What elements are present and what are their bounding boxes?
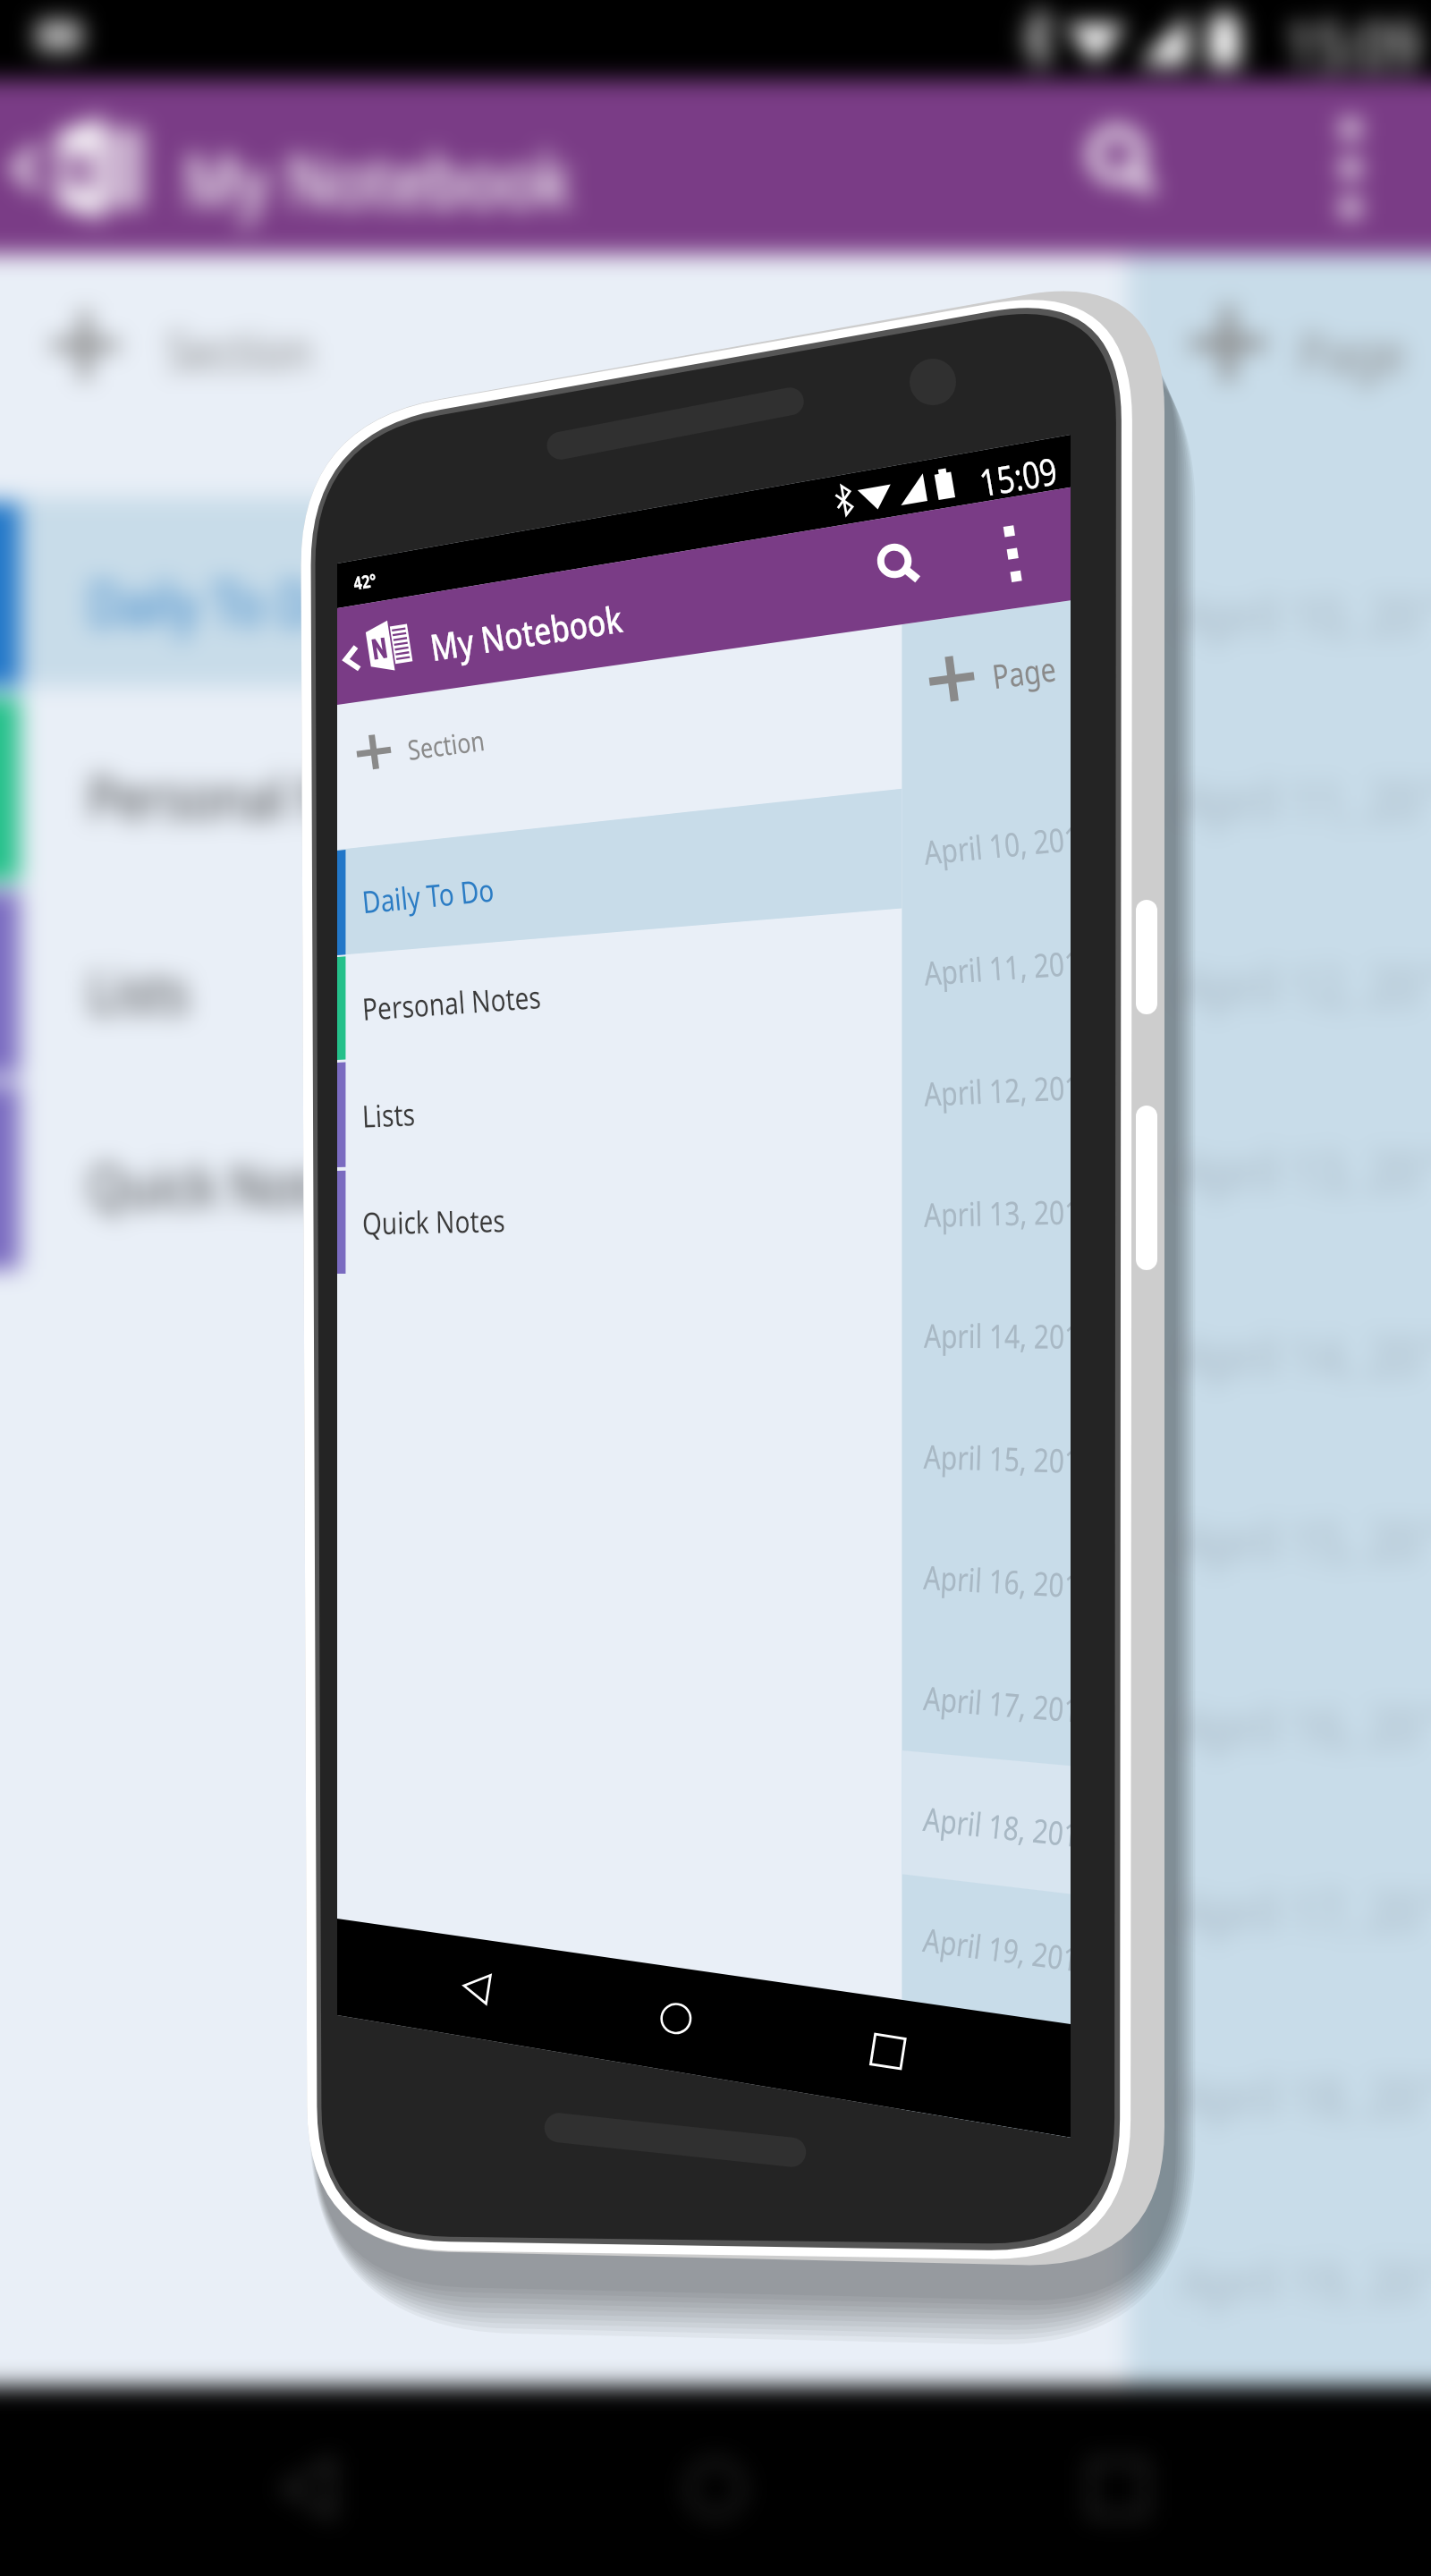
button[interactable] <box>903 787 1070 907</box>
button[interactable] <box>903 1760 1070 1880</box>
button[interactable] <box>903 909 1070 1029</box>
button[interactable] <box>338 1063 896 1166</box>
button[interactable] <box>340 707 894 814</box>
button[interactable] <box>386 590 655 698</box>
button[interactable] <box>338 1170 896 1274</box>
button[interactable] <box>338 955 896 1059</box>
button[interactable]: Back <box>322 617 386 710</box>
button[interactable] <box>903 1639 1070 1758</box>
button[interactable]: Back <box>438 1941 528 2030</box>
button[interactable]: Recent apps <box>845 2012 935 2102</box>
button[interactable] <box>903 1152 1070 1272</box>
button[interactable] <box>338 845 896 951</box>
button[interactable]: Home <box>635 1977 724 2066</box>
button[interactable]: More options <box>966 492 1059 599</box>
button[interactable]: Search <box>850 510 948 617</box>
button[interactable] <box>903 1395 1070 1515</box>
button[interactable] <box>903 1517 1070 1637</box>
button[interactable] <box>903 572 1070 680</box>
button[interactable] <box>903 1274 1070 1394</box>
button[interactable] <box>903 1030 1070 1150</box>
